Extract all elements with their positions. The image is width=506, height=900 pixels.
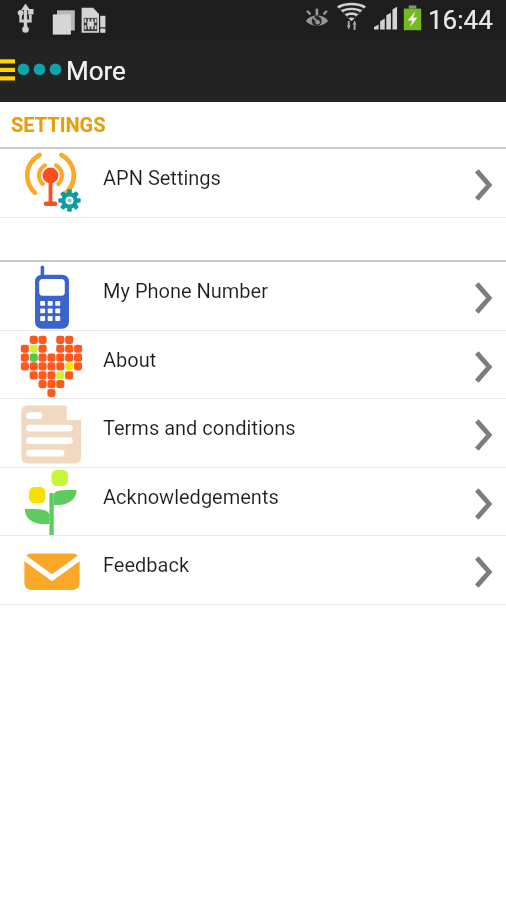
staticText: Terms and conditions xyxy=(103,416,296,439)
staticText: Acknowledgements xyxy=(103,485,279,508)
staticText: My Phone Number xyxy=(103,279,268,302)
button[interactable]: My Phone Number xyxy=(0,262,506,330)
staticText: More xyxy=(66,56,126,86)
button[interactable]: Acknowledgements xyxy=(0,468,506,535)
button[interactable]: Open navigation menu xyxy=(0,40,66,102)
staticText: APN Settings xyxy=(103,166,221,189)
staticText: SETTINGS xyxy=(11,113,106,136)
staticText: Feedback xyxy=(103,553,190,576)
button[interactable]: About xyxy=(0,331,506,398)
staticText: 16:44 xyxy=(428,5,493,35)
button[interactable]: Terms and conditions xyxy=(0,399,506,467)
button[interactable]: APN Settings xyxy=(0,149,506,217)
staticText: About xyxy=(103,348,157,371)
button[interactable]: Feedback xyxy=(0,536,506,604)
